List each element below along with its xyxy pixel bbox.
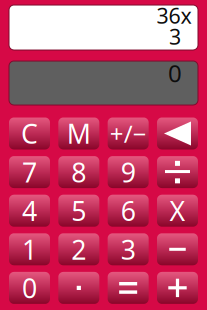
button[interactable]: 0 [9, 272, 50, 304]
staticText: 7 [22, 154, 37, 190]
button[interactable]: +/− [108, 117, 149, 149]
staticText: X [169, 193, 185, 228]
button[interactable]: 9 [108, 156, 149, 188]
button[interactable]: Minus [157, 233, 198, 265]
staticText: 36x [156, 1, 191, 30]
button[interactable]: 4 [9, 195, 50, 227]
button[interactable]: 7 [9, 156, 50, 188]
button[interactable]: M [58, 117, 99, 149]
button[interactable]: C [9, 117, 50, 149]
staticText: 9 [121, 154, 136, 190]
staticText: 0 [22, 270, 37, 306]
button[interactable]: Equals [108, 272, 149, 304]
button[interactable]: 5 [58, 195, 99, 227]
button[interactable]: 3 [108, 233, 149, 265]
staticText: 1 [22, 232, 37, 267]
staticText: 3 [121, 232, 136, 267]
staticText: 8 [71, 154, 86, 190]
staticText: 0 [168, 57, 182, 89]
staticText: M [67, 116, 91, 151]
button[interactable]: 2 [58, 233, 99, 265]
staticText: 4 [22, 193, 37, 228]
button[interactable]: X [157, 195, 198, 227]
staticText: +/− [110, 118, 147, 149]
button[interactable]: Plus [157, 272, 198, 304]
button[interactable]: 6 [108, 195, 149, 227]
staticText: 5 [71, 193, 86, 228]
button[interactable]: Backspace [157, 117, 198, 149]
button[interactable]: 8 [58, 156, 99, 188]
button[interactable]: Decimal point [58, 272, 99, 304]
button[interactable]: Divide [157, 156, 198, 188]
staticText: 6 [121, 193, 136, 228]
staticText: 2 [71, 232, 86, 267]
staticText: C [21, 116, 38, 151]
staticText: 3 [169, 22, 181, 51]
button[interactable]: 1 [9, 233, 50, 265]
